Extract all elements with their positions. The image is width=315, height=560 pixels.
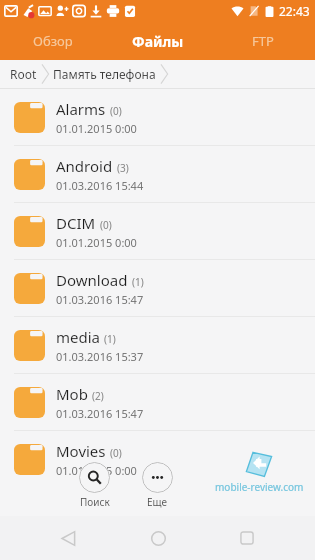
button[interactable]: DCIM bbox=[0, 203, 315, 259]
staticText: Android bbox=[56, 156, 113, 176]
staticText: 01.01.2015 0:00 bbox=[56, 235, 137, 250]
staticText: (0) bbox=[110, 446, 122, 460]
staticText: (1) bbox=[104, 332, 116, 346]
staticText: 01.03.2016 15:47 bbox=[56, 406, 144, 421]
button[interactable]: Обзор bbox=[0, 22, 105, 60]
staticText: Обзор bbox=[33, 32, 73, 50]
staticText: DCIM bbox=[56, 213, 96, 233]
button[interactable]: Home bbox=[136, 516, 180, 560]
button[interactable]: Android bbox=[0, 146, 315, 202]
staticText: FTP bbox=[252, 32, 274, 50]
staticText: Movies bbox=[56, 441, 106, 461]
button[interactable]: Еще bbox=[142, 462, 173, 509]
staticText: 01.03.2016 15:44 bbox=[56, 178, 144, 193]
button[interactable]: Файлы bbox=[105, 22, 210, 60]
button[interactable]: media bbox=[0, 317, 315, 373]
button[interactable]: Download bbox=[0, 260, 315, 316]
staticText: 01.03.2016 15:37 bbox=[56, 349, 144, 364]
button[interactable]: Movies bbox=[0, 431, 315, 487]
staticText: Mob bbox=[56, 384, 88, 404]
button[interactable]: Root bbox=[8, 63, 39, 85]
staticText: 01.01.2015 0:00 bbox=[56, 121, 137, 136]
staticText: (0) bbox=[110, 104, 122, 118]
staticText: 01.03.2016 15:47 bbox=[56, 292, 144, 307]
button[interactable]: Alarms bbox=[0, 89, 315, 145]
staticText: 01.01.2015 0:00 bbox=[56, 463, 137, 478]
staticText: Память телефона bbox=[53, 66, 156, 82]
staticText: (0) bbox=[100, 218, 112, 232]
staticText: Download bbox=[56, 270, 128, 290]
button[interactable]: Back bbox=[46, 516, 90, 560]
staticText: Еще bbox=[147, 495, 168, 509]
staticText: Файлы bbox=[132, 32, 184, 51]
button[interactable]: Mob bbox=[0, 374, 315, 430]
staticText: Поиск bbox=[80, 495, 110, 509]
button[interactable]: FTP bbox=[210, 22, 315, 60]
staticText: Alarms bbox=[56, 99, 106, 119]
staticText: media bbox=[56, 327, 100, 347]
button[interactable]: Память телефона bbox=[51, 63, 158, 85]
staticText: mobile-review.com bbox=[215, 480, 304, 494]
staticText: 22:43 bbox=[279, 3, 310, 19]
staticText: (3) bbox=[117, 161, 129, 175]
button[interactable]: Recents bbox=[225, 516, 269, 560]
staticText: (2) bbox=[92, 389, 104, 403]
staticText: (1) bbox=[132, 275, 144, 289]
staticText: Root bbox=[10, 66, 37, 82]
button[interactable]: Поиск bbox=[79, 462, 110, 509]
